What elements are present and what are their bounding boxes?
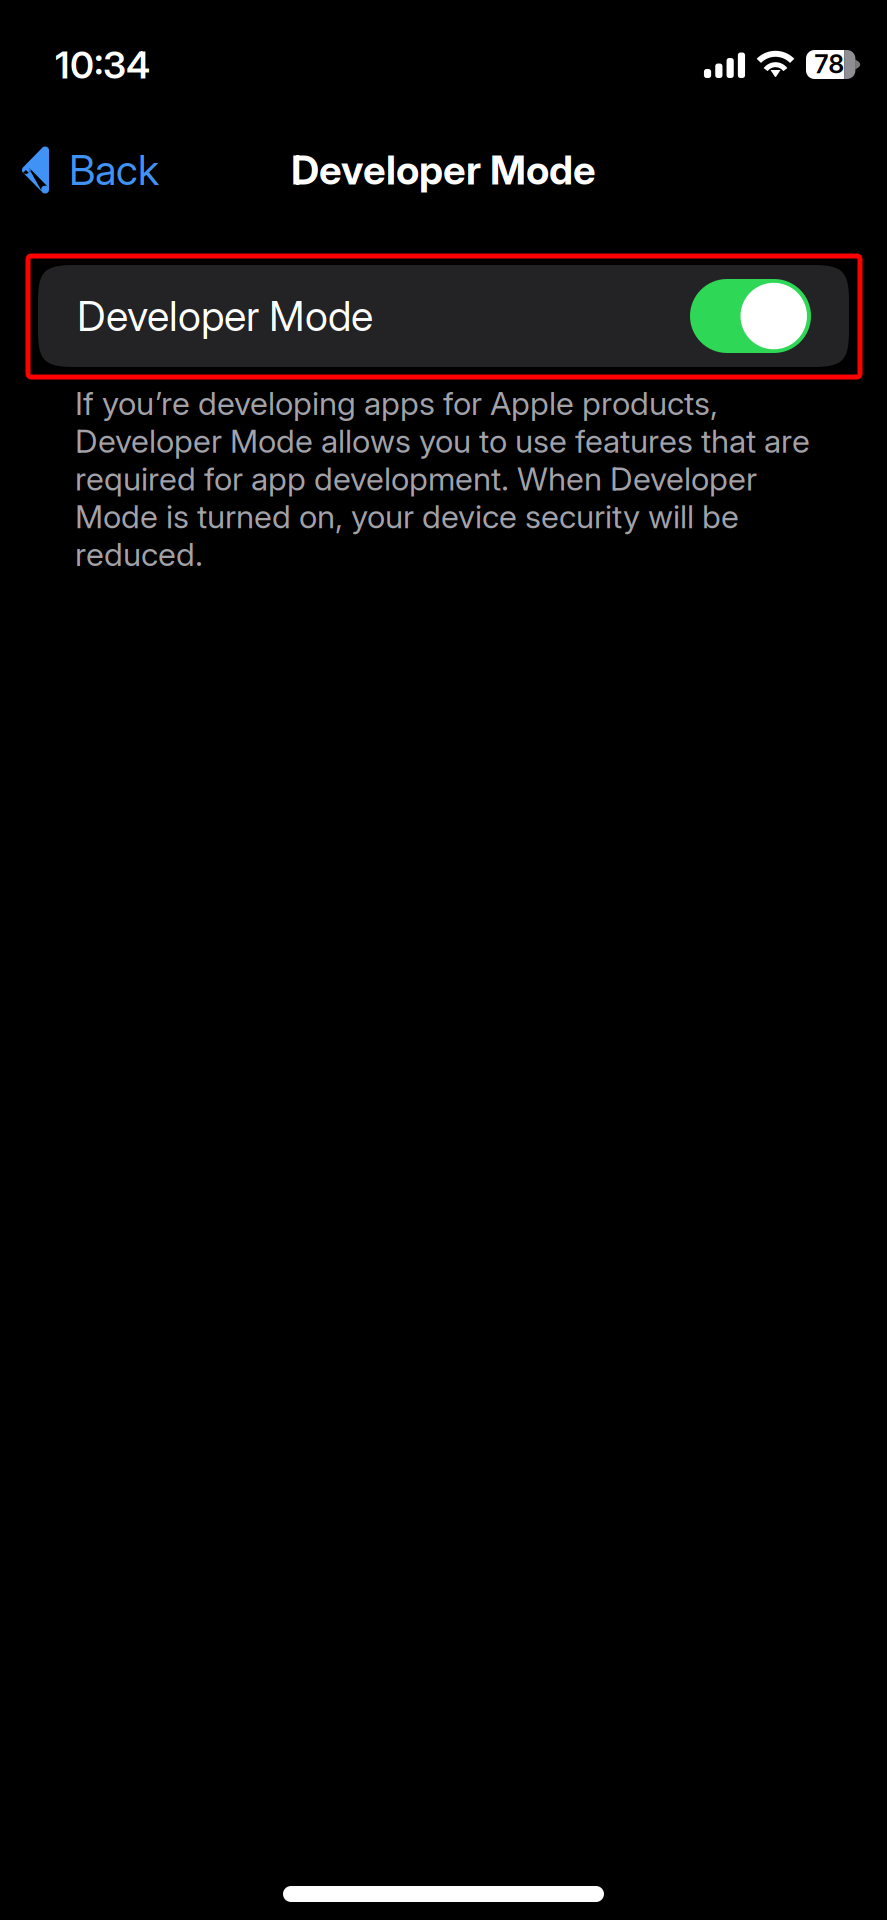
staticText: 10:34 <box>55 42 150 88</box>
button[interactable]: Developer Mode <box>38 265 849 367</box>
staticText: Developer Mode <box>291 146 596 194</box>
button[interactable]: Back <box>0 141 177 199</box>
staticText: 78 <box>814 49 844 79</box>
staticText: If you’re developing apps for Apple prod… <box>75 384 810 573</box>
staticText: Back <box>69 145 159 195</box>
staticText: Developer Mode <box>77 291 373 341</box>
